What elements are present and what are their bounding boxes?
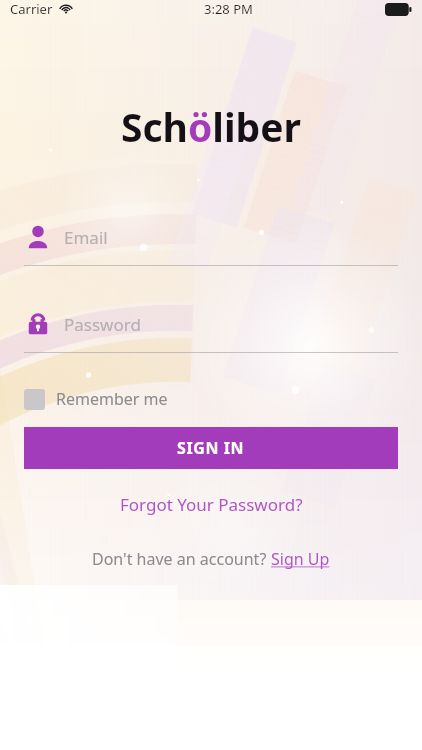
other: Email [24, 223, 52, 251]
staticText: Carrier [10, 0, 53, 18]
staticText: Sign Up [271, 548, 330, 570]
other: Password [24, 310, 52, 338]
button[interactable]: Forgot Your Password? [112, 489, 311, 520]
staticText: SIGN IN [177, 437, 245, 459]
staticText: Remember me [56, 388, 168, 410]
button[interactable]: Email [24, 219, 398, 266]
staticText: 3:28 PM [204, 0, 253, 18]
staticText: Schöliber [121, 100, 301, 153]
staticText: Email [64, 226, 108, 249]
staticText: Don't have an account? [92, 548, 271, 570]
staticText: Password [64, 313, 141, 336]
button[interactable]: Password [24, 306, 398, 353]
button[interactable]: SIGN IN [24, 427, 398, 469]
button[interactable]: Sign Up [271, 548, 330, 570]
button[interactable]: Remember me [24, 386, 168, 412]
staticText: Forgot Your Password? [120, 493, 303, 516]
